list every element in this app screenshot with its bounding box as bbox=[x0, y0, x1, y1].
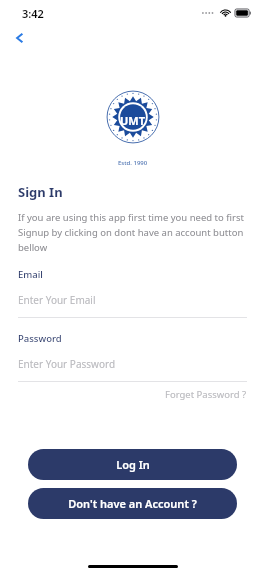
staticText: Don't have an Account ? bbox=[68, 496, 197, 511]
button[interactable]: Forget Password ? bbox=[165, 388, 247, 401]
button[interactable]: Don't have an Account ? bbox=[28, 488, 237, 519]
staticText: Enter Your Password bbox=[18, 357, 116, 371]
button[interactable]: Log In bbox=[28, 449, 237, 480]
staticText: Log In bbox=[116, 457, 150, 472]
staticText: UMT bbox=[120, 113, 146, 128]
button[interactable]: Back bbox=[8, 26, 32, 50]
staticText: Sign In bbox=[18, 183, 63, 201]
button[interactable]: Enter Your Password bbox=[18, 357, 247, 371]
staticText: If you are using this app first time you… bbox=[18, 211, 247, 254]
staticText: Estd. 1990 bbox=[118, 159, 148, 167]
staticText: 3:42 bbox=[22, 6, 44, 21]
button[interactable]: Enter Your Email bbox=[18, 293, 247, 307]
staticText: Enter Your Email bbox=[18, 293, 96, 307]
staticText: Password bbox=[18, 332, 62, 345]
staticText: Forget Password ? bbox=[165, 388, 247, 401]
staticText: Email bbox=[18, 268, 43, 281]
